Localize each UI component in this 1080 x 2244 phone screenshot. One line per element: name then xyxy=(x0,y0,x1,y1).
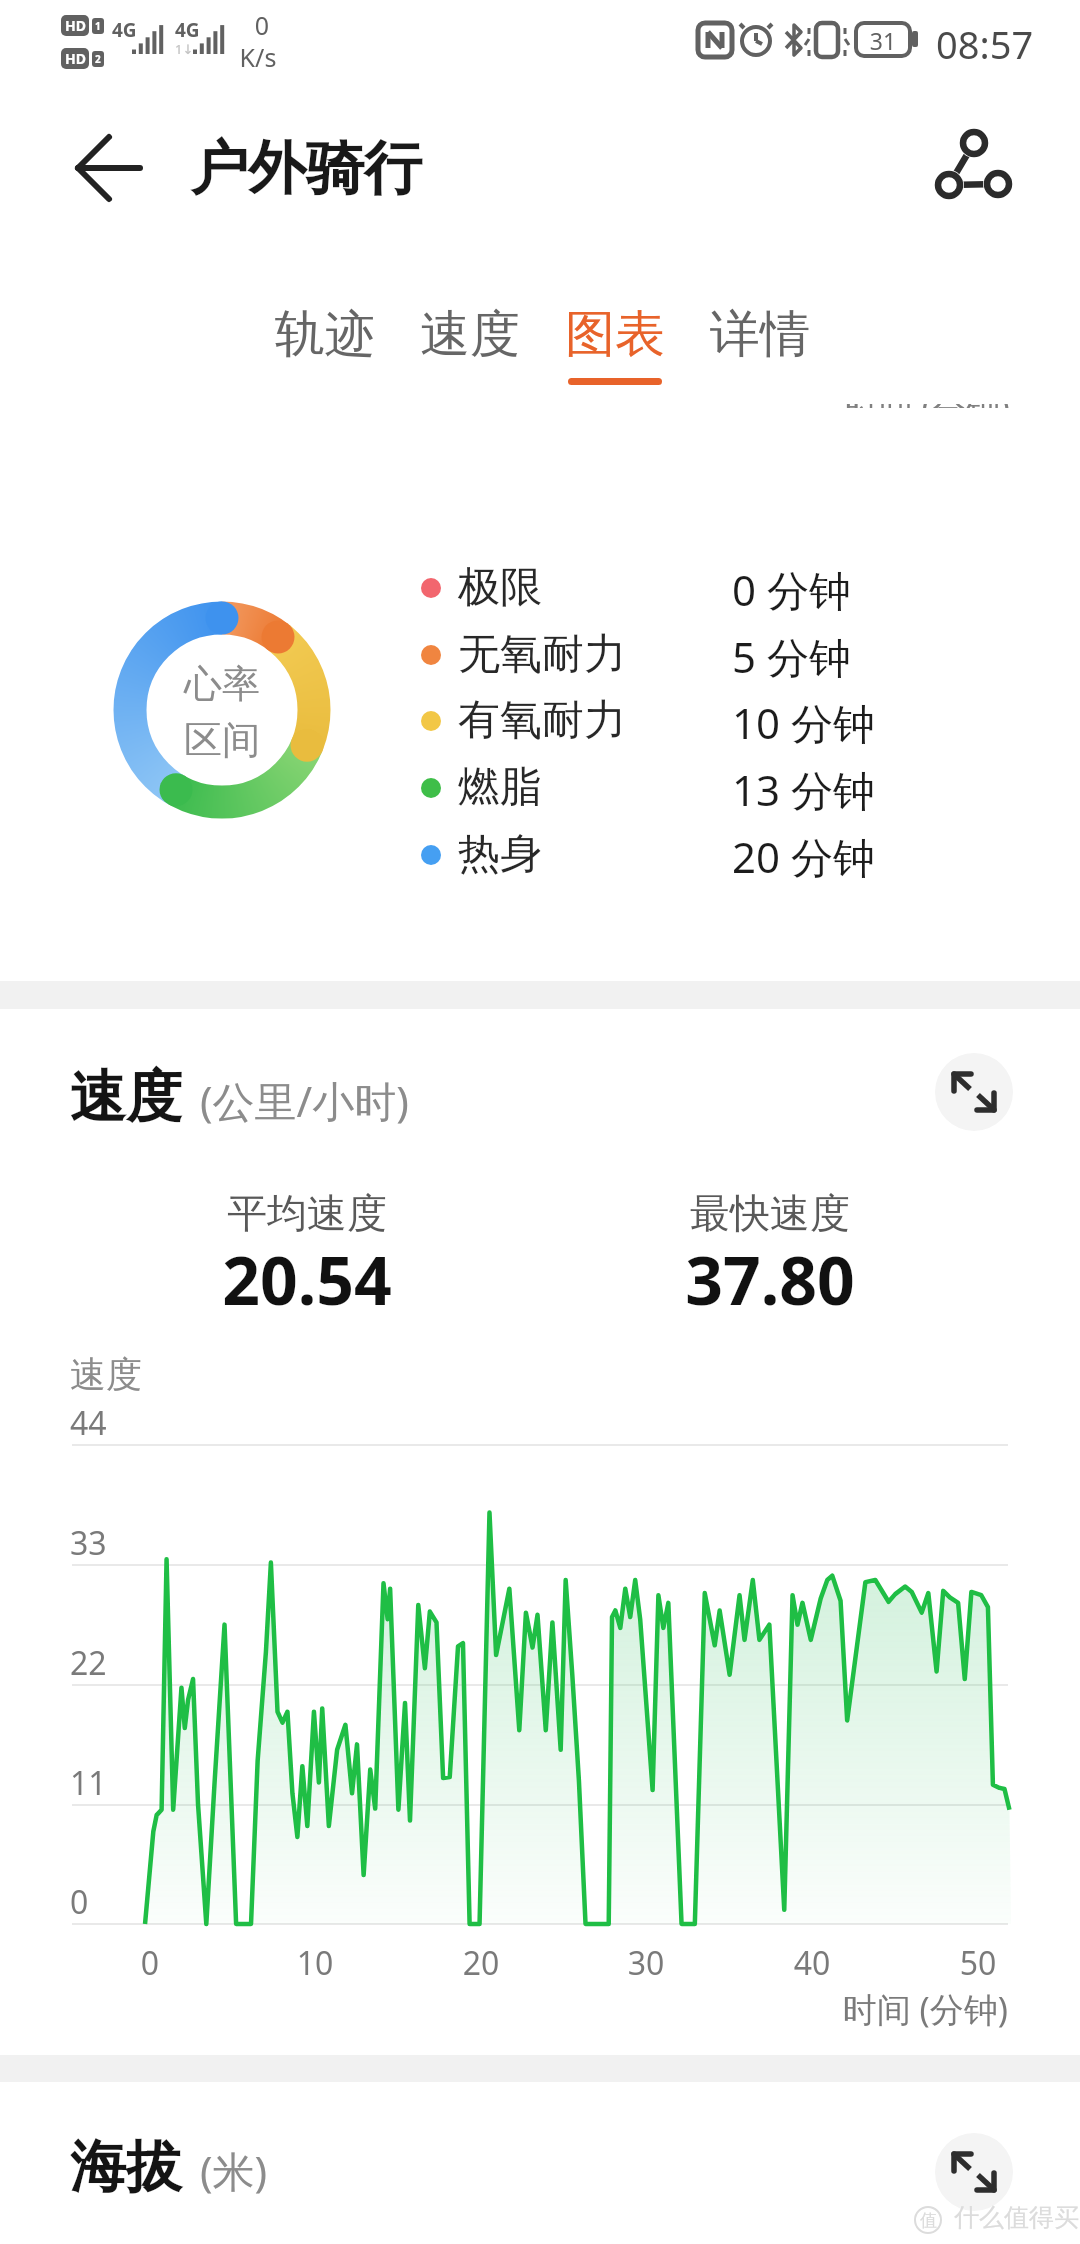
staticText: 31 xyxy=(856,25,910,56)
staticText: 20.54 xyxy=(157,1234,457,1324)
staticText: 0 xyxy=(232,8,292,42)
staticText: 图表 xyxy=(565,303,665,366)
staticText: 11 xyxy=(70,1761,107,1805)
button[interactable]: 图表 xyxy=(550,295,680,395)
staticText: 详情 xyxy=(710,303,810,366)
staticText: 什么值得买 xyxy=(954,2202,1079,2233)
staticText: 5 分钟 xyxy=(732,628,851,685)
staticText: 平均速度 xyxy=(157,1188,457,1238)
button[interactable] xyxy=(925,125,1020,215)
staticText: 20 xyxy=(441,1941,521,1985)
staticText: 户外骑行 xyxy=(190,132,422,205)
staticText: 22 xyxy=(70,1641,107,1685)
staticText: 40 xyxy=(772,1941,852,1985)
staticText: 20 分钟 xyxy=(732,828,875,885)
button[interactable]: 速度 xyxy=(405,295,535,395)
staticText: 13 分钟 xyxy=(732,761,875,818)
staticText: 心率 xyxy=(122,660,322,708)
staticText: 热身 xyxy=(458,828,542,881)
staticText: 10 分钟 xyxy=(732,694,875,751)
staticText: 10 xyxy=(275,1941,355,1985)
button[interactable] xyxy=(935,1053,1013,1131)
staticText: HD xyxy=(65,16,86,35)
staticText: 最快速度 xyxy=(620,1188,920,1238)
staticText: 44 xyxy=(70,1401,107,1445)
staticText: 海拔 xyxy=(70,2132,182,2203)
staticText: 极限 xyxy=(458,561,542,614)
staticText: HD xyxy=(65,49,86,68)
staticText: 0 xyxy=(70,1880,89,1924)
button[interactable] xyxy=(58,130,158,206)
staticText: 08:57 xyxy=(936,18,1034,70)
staticText: (公里/小时) xyxy=(200,1072,409,1129)
button[interactable]: 轨迹 xyxy=(260,295,390,395)
staticText: 速度 xyxy=(70,1062,182,1133)
staticText: 1 xyxy=(95,19,101,33)
staticText: 37.80 xyxy=(620,1234,920,1324)
staticText: 有氧耐力 xyxy=(458,694,626,747)
staticText: 1↓ xyxy=(175,40,194,58)
staticText: 33 xyxy=(70,1521,107,1565)
staticText: 50 xyxy=(938,1941,1018,1985)
staticText: 速度 xyxy=(420,303,520,366)
staticText: 区间 xyxy=(122,716,322,764)
staticText: 无氧耐力 xyxy=(458,628,626,681)
staticText: 速度 xyxy=(70,1352,142,1397)
staticText: 4G xyxy=(112,17,137,43)
button[interactable] xyxy=(935,2133,1013,2211)
staticText: 2 xyxy=(95,52,101,66)
staticText: 30 xyxy=(606,1941,686,1985)
staticText: 0 分钟 xyxy=(732,561,851,618)
staticText: 轨迹 xyxy=(275,303,375,366)
button[interactable]: 详情 xyxy=(695,295,825,395)
staticText: K/s xyxy=(224,40,292,74)
staticText: 4G xyxy=(175,17,200,43)
staticText: 燃脂 xyxy=(458,761,542,814)
staticText: 时间 (分钟) xyxy=(750,404,1010,408)
staticText: 时间 (分钟) xyxy=(700,1986,1008,2032)
staticText: 0 xyxy=(110,1941,190,1985)
staticText: (米) xyxy=(200,2142,268,2199)
staticText: 值 xyxy=(920,2210,937,2231)
